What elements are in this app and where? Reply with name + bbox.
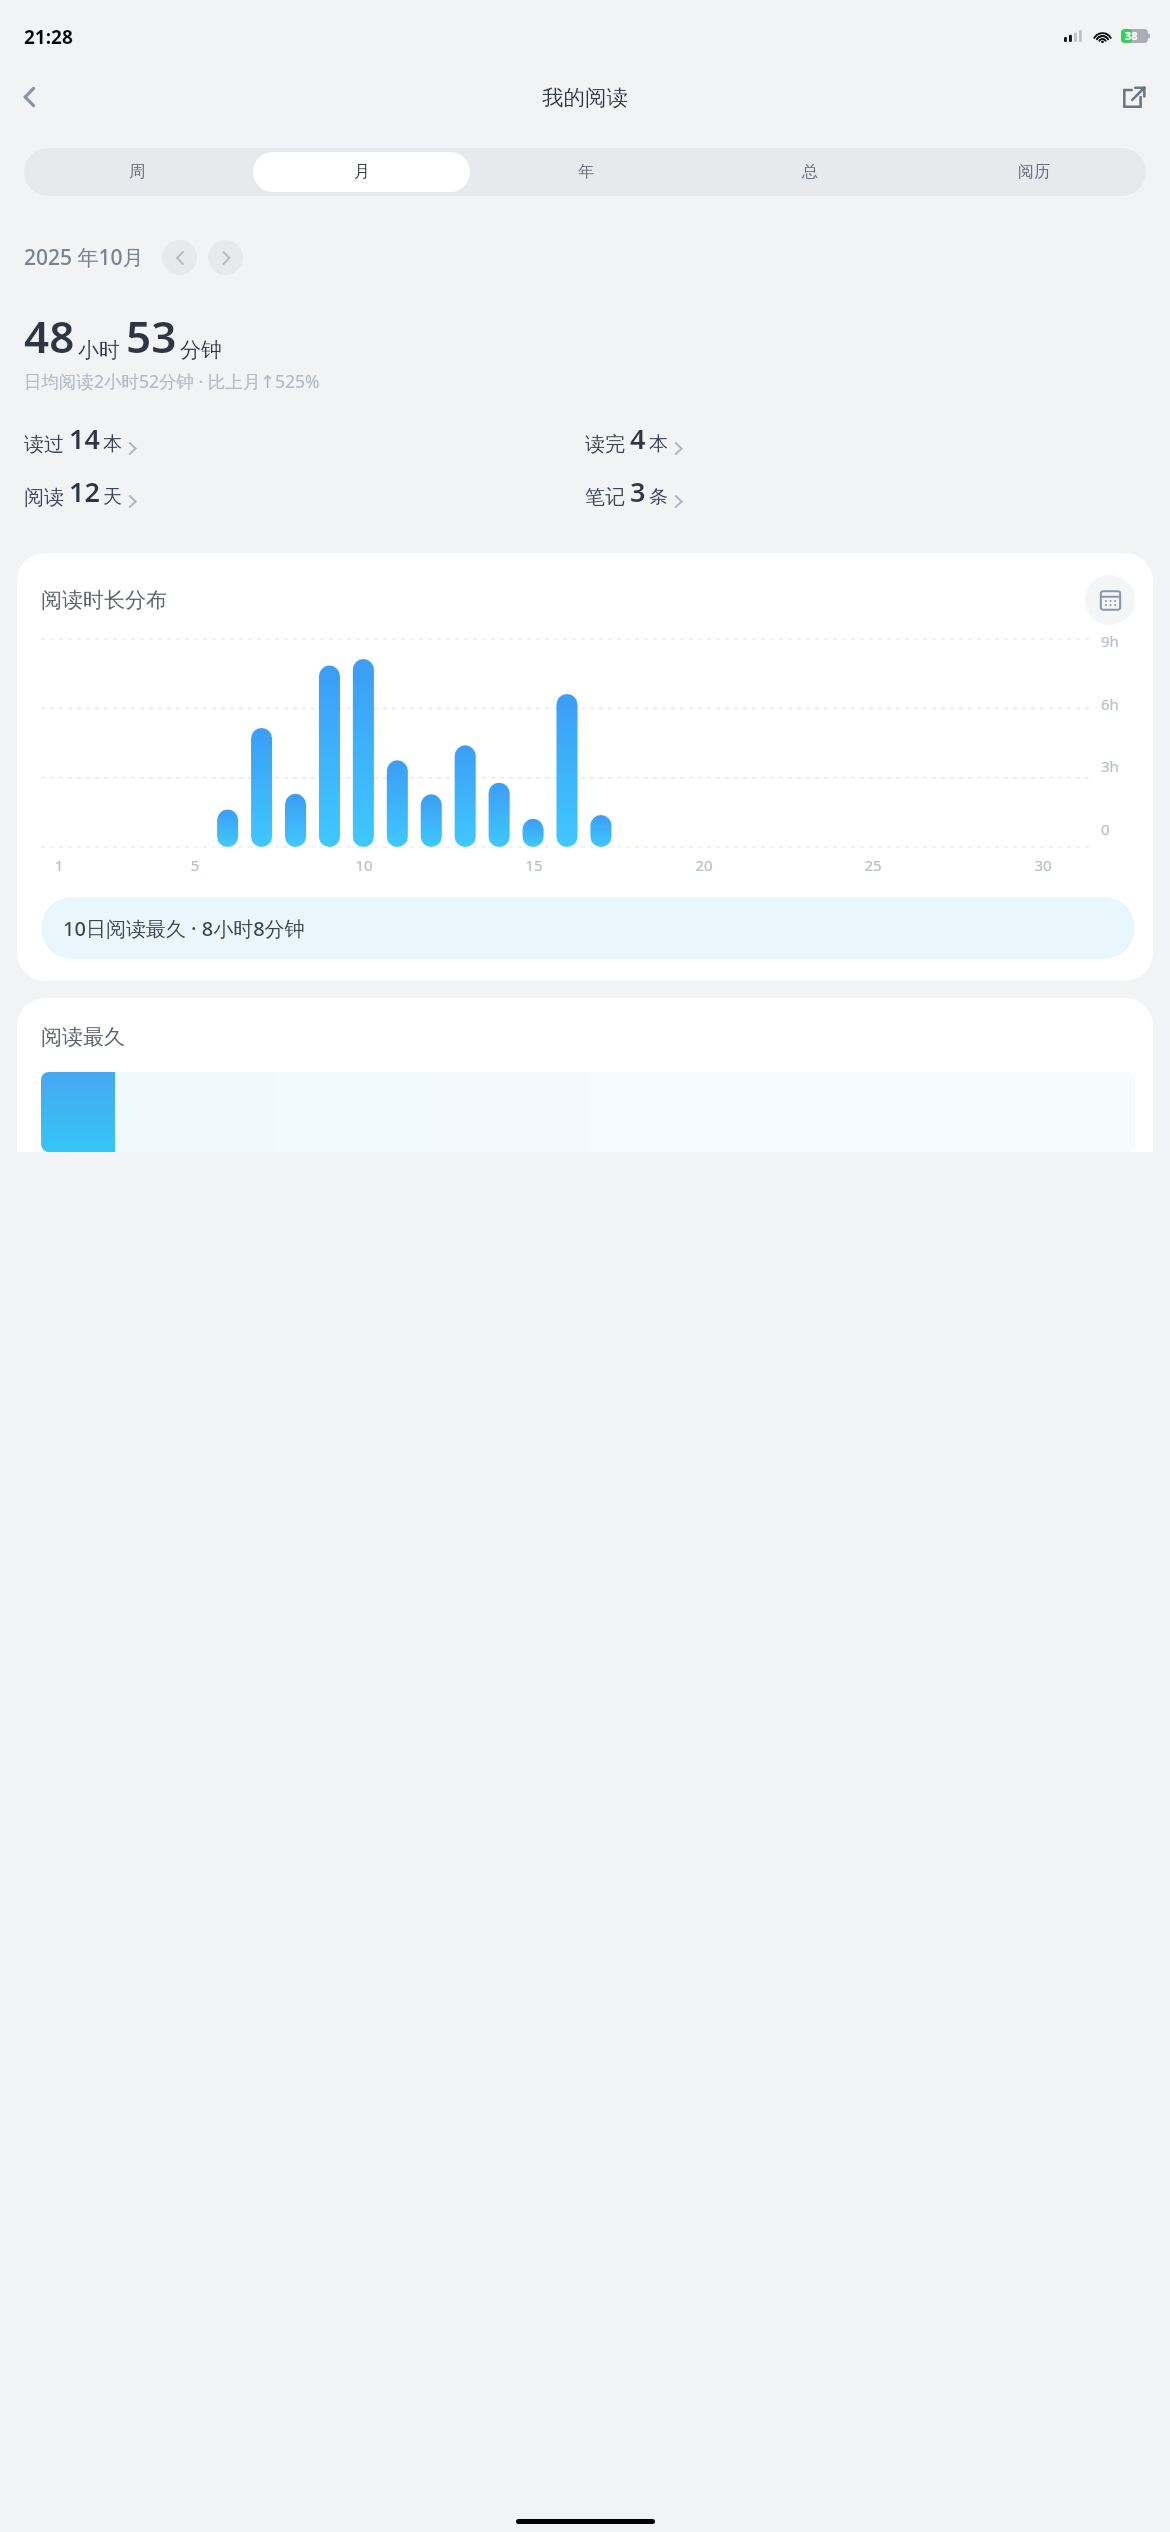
staticText: 15 bbox=[524, 855, 544, 875]
staticText: 天 bbox=[103, 485, 122, 509]
staticText: 阅读时长分布 bbox=[41, 587, 1085, 613]
staticText: 3h bbox=[1101, 756, 1135, 776]
staticText: 日均阅读2小时52分钟 · 比上月↑525% bbox=[24, 369, 320, 393]
staticText: 25 bbox=[863, 855, 883, 875]
button[interactable]: 读过 bbox=[24, 420, 585, 457]
staticText: 条 bbox=[649, 485, 668, 509]
staticText: 10日阅读最久 · 8小时8分钟 bbox=[63, 915, 305, 942]
staticText: 阅读最久 bbox=[41, 1024, 125, 1050]
button[interactable]: Next month bbox=[208, 240, 243, 275]
button[interactable]: 月 bbox=[253, 152, 470, 192]
staticText: 笔记 bbox=[585, 485, 625, 510]
staticText: 4 bbox=[630, 420, 646, 457]
button[interactable]: 10日阅读最久 · 8小时8分钟 bbox=[41, 897, 1135, 959]
staticText: 小时 bbox=[78, 337, 120, 363]
staticText: 10 bbox=[354, 855, 374, 875]
staticText: 2025 年10月 bbox=[24, 243, 144, 272]
button[interactable]: Previous month bbox=[162, 240, 197, 275]
staticText: 6h bbox=[1101, 694, 1135, 714]
staticText: 48 bbox=[24, 306, 75, 366]
staticText: 总 bbox=[802, 162, 818, 182]
button[interactable]: Back bbox=[6, 73, 54, 121]
staticText: 21:28 bbox=[24, 24, 73, 50]
staticText: 1 bbox=[49, 855, 69, 875]
staticText: 30 bbox=[1033, 855, 1053, 875]
staticText: 20 bbox=[694, 855, 714, 875]
staticText: 本 bbox=[103, 432, 122, 456]
staticText: 9h bbox=[1101, 631, 1135, 651]
staticText: 0 bbox=[1101, 819, 1135, 839]
staticText: 5 bbox=[185, 855, 205, 875]
button[interactable]: Share bbox=[1110, 73, 1158, 121]
staticText: 读完 bbox=[585, 432, 625, 457]
staticText: 读过 bbox=[24, 432, 64, 457]
button[interactable]: 总 bbox=[702, 152, 918, 192]
button[interactable]: 阅读 bbox=[24, 473, 585, 510]
button[interactable] bbox=[41, 1072, 1135, 1152]
staticText: 53 bbox=[126, 306, 177, 366]
staticText: 我的阅读 bbox=[542, 84, 628, 111]
staticText: 阅历 bbox=[1018, 162, 1050, 182]
staticText: 周 bbox=[129, 162, 145, 182]
button[interactable]: 年 bbox=[478, 152, 694, 192]
staticText: 本 bbox=[649, 432, 668, 456]
staticText: 38 bbox=[1125, 28, 1138, 43]
button[interactable]: 阅历 bbox=[926, 152, 1142, 192]
staticText: 3 bbox=[630, 473, 646, 510]
button[interactable]: 笔记 bbox=[585, 473, 1146, 510]
button[interactable]: Calendar bbox=[1085, 575, 1135, 625]
staticText: 阅读 bbox=[24, 485, 64, 510]
button[interactable]: 周 bbox=[28, 152, 245, 192]
button[interactable]: 读完 bbox=[585, 420, 1146, 457]
staticText: 年 bbox=[578, 162, 594, 182]
staticText: 12 bbox=[69, 473, 100, 510]
staticText: 分钟 bbox=[180, 337, 222, 363]
staticText: 14 bbox=[69, 420, 100, 457]
staticText: 月 bbox=[354, 162, 370, 182]
